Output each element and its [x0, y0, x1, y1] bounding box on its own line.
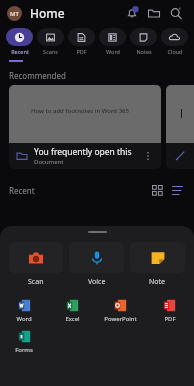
button[interactable]: Search [165, 2, 187, 24]
button[interactable]: Notes [128, 26, 159, 60]
button[interactable]: Scans [35, 26, 66, 60]
button[interactable]: Word [0, 299, 48, 323]
button[interactable]: PowerPoint [96, 299, 145, 323]
staticText: PDF [76, 48, 87, 55]
button[interactable] [69, 242, 124, 273]
staticText: Note [149, 277, 166, 287]
staticText: Recent [9, 185, 35, 196]
staticText: Notes [136, 48, 152, 55]
staticText: Forms [15, 346, 33, 354]
staticText: Scans [43, 48, 58, 55]
staticText: Scan [28, 277, 44, 287]
staticText: PDF [164, 315, 176, 323]
staticText: Document [34, 158, 64, 166]
button[interactable]: Forms [0, 330, 48, 354]
button[interactable]: Files [143, 2, 165, 24]
staticText: How to add footnotes in Word 365 [31, 107, 129, 115]
button[interactable]: How to add footnotes in Word 365 [9, 85, 161, 169]
button[interactable]: Sort [169, 182, 185, 198]
staticText: Recent [11, 48, 29, 55]
staticText: Voice [88, 277, 106, 287]
staticText: Cloud [167, 48, 183, 55]
button[interactable]: PDF [145, 299, 194, 323]
staticText: PowerPoint [104, 315, 137, 323]
button[interactable] [9, 242, 63, 273]
button[interactable]: Cloud [159, 26, 190, 60]
staticText: Excel [65, 315, 80, 323]
button[interactable]: Grid view [149, 182, 165, 198]
button[interactable]: Recent [4, 26, 35, 60]
button[interactable] [166, 85, 194, 169]
button[interactable]: PDF [66, 26, 97, 60]
staticText: Word [16, 315, 32, 323]
button[interactable]: Account [7, 6, 22, 21]
staticText: Home [30, 5, 65, 21]
staticText: You frequently open this [34, 146, 132, 158]
button[interactable]: Word [97, 26, 128, 60]
button[interactable] [130, 242, 185, 273]
staticText: Word [106, 48, 120, 55]
staticText: Recommended [9, 70, 66, 81]
button[interactable]: More options [142, 150, 154, 162]
staticText: MT [10, 10, 19, 18]
button[interactable]: Excel [48, 299, 96, 323]
button[interactable]: Notifications [121, 2, 143, 24]
